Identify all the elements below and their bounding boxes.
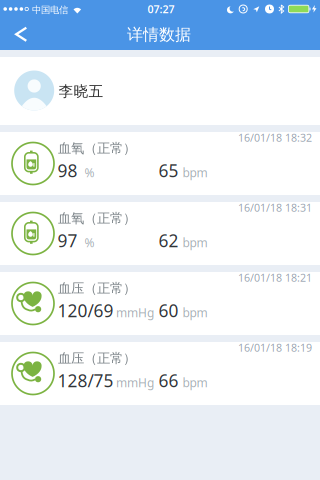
staticText: bpm	[182, 165, 207, 180]
staticText: 详情数据	[127, 25, 191, 44]
staticText: 16/01/18 18:32	[238, 130, 312, 145]
staticText: 98	[57, 159, 77, 182]
staticText: mmHg	[116, 305, 154, 320]
staticText: 李晓五	[58, 82, 103, 100]
staticText: 62	[158, 229, 178, 252]
staticText: 65	[158, 159, 178, 182]
staticText: 60	[158, 299, 178, 322]
staticText: 血氧（正常）	[58, 210, 136, 226]
staticText: %	[84, 165, 94, 180]
staticText: 中国电信	[32, 4, 68, 16]
staticText: mmHg	[116, 375, 154, 390]
staticText: 97	[57, 229, 77, 252]
staticText: 血氧（正常）	[58, 140, 136, 156]
staticText: 120/69	[57, 299, 113, 322]
staticText: 16/01/18 18:21	[238, 270, 312, 285]
staticText: %	[84, 235, 94, 250]
staticText: bpm	[182, 305, 207, 320]
staticText: 血压（正常）	[58, 350, 136, 366]
staticText: 66	[158, 369, 178, 392]
staticText: 07:27	[147, 2, 174, 16]
staticText: 128/75	[57, 369, 113, 392]
staticText: 16/01/18 18:19	[238, 340, 312, 355]
button[interactable]: Back	[0, 20, 37, 48]
staticText: bpm	[182, 235, 207, 250]
staticText: bpm	[182, 375, 207, 390]
staticText: 16/01/18 18:31	[238, 200, 312, 215]
staticText: 血压（正常）	[58, 280, 136, 296]
